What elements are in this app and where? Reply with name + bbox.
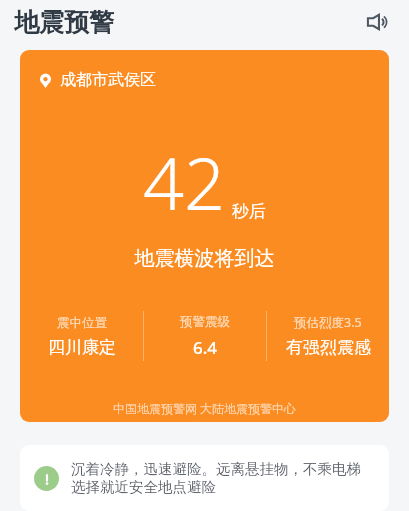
staticText: 6.4 [193, 336, 218, 359]
staticText: 预警震级 [180, 314, 230, 330]
staticText: 选择就近安全地点避险 [71, 478, 216, 496]
staticText: 四川康定 [48, 337, 116, 358]
button[interactable]: 成都市武侯区 [20, 50, 389, 422]
staticText: 地震预警 [14, 7, 114, 38]
button[interactable]: 沉着冷静，迅速避险。远离悬挂物，不乘电梯 [20, 445, 389, 511]
staticText: 震中位置 [57, 315, 107, 331]
staticText: 预估烈度3.5 [294, 314, 362, 331]
staticText: 有强烈震感 [286, 337, 371, 358]
staticText: 中国地震预警网 大陆地震预警中心 [20, 400, 389, 416]
staticText: 沉着冷静，迅速避险。远离悬挂物，不乘电梯 [71, 460, 361, 478]
staticText: 秒后 [232, 201, 266, 222]
staticText: 地震横波将到达 [20, 246, 389, 271]
staticText: 成都市武侯区 [60, 70, 156, 90]
staticText: 四川省应急管理局 [20, 420, 389, 422]
button[interactable]: Sound on [361, 5, 395, 39]
staticText: 42 [143, 133, 226, 231]
